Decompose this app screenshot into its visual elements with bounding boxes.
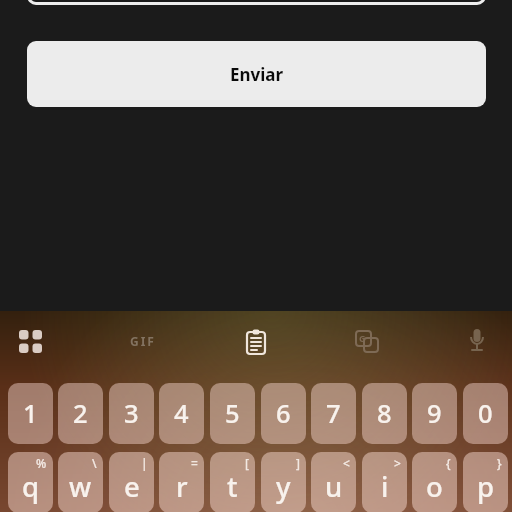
button[interactable]: r (159, 452, 204, 512)
staticText: Enviar (230, 63, 284, 86)
staticText: 5 (225, 396, 240, 431)
button[interactable]: 5 (210, 383, 255, 444)
button[interactable] (239, 324, 273, 358)
staticText: | (141, 455, 148, 471)
button[interactable]: 0 (463, 383, 508, 444)
button[interactable]: e (109, 452, 154, 512)
button[interactable]: 2 (58, 383, 103, 444)
staticText: 2 (73, 396, 88, 431)
staticText: o (426, 468, 443, 505)
button[interactable] (14, 325, 48, 359)
button[interactable]: 6 (261, 383, 306, 444)
staticText: p (477, 468, 495, 505)
staticText: % (36, 455, 47, 471)
staticText: 4 (174, 396, 189, 431)
staticText: > (394, 455, 401, 471)
button[interactable]: q (8, 452, 53, 512)
staticText: y (276, 468, 291, 505)
button[interactable]: 1 (8, 383, 53, 444)
staticText: 0 (478, 396, 493, 431)
staticText: \ (92, 455, 97, 471)
staticText: w (69, 468, 92, 505)
button[interactable]: 7 (311, 383, 356, 444)
button[interactable]: w (58, 452, 103, 512)
button[interactable]: Enviar (27, 41, 486, 107)
button[interactable]: p (463, 452, 508, 512)
button[interactable]: 9 (412, 383, 457, 444)
staticText: < (343, 455, 350, 471)
staticText: q (22, 468, 40, 505)
staticText: 8 (377, 396, 392, 431)
button[interactable]: G (350, 325, 384, 359)
button[interactable]: 4 (159, 383, 204, 444)
staticText: e (124, 468, 140, 505)
staticText: G (359, 332, 366, 344)
button[interactable]: y (261, 452, 306, 512)
staticText: 3 (124, 396, 139, 431)
staticText: u (325, 468, 343, 505)
staticText: [ (245, 455, 249, 471)
staticText: i (381, 468, 389, 505)
button[interactable]: o (412, 452, 457, 512)
staticText: GIF (130, 333, 156, 349)
staticText: ] (296, 455, 300, 471)
button[interactable]: GIF (124, 324, 162, 358)
button[interactable] (460, 325, 494, 359)
button[interactable]: u (311, 452, 356, 512)
button[interactable]: t (210, 452, 255, 512)
staticText: 6 (276, 396, 291, 431)
staticText: t (227, 468, 238, 505)
staticText: 9 (427, 396, 442, 431)
staticText: 1 (23, 396, 38, 431)
button[interactable]: i (362, 452, 407, 512)
staticText: = (191, 455, 198, 471)
button[interactable]: 3 (109, 383, 154, 444)
staticText: } (497, 455, 502, 471)
button[interactable]: 8 (362, 383, 407, 444)
staticText: 7 (326, 396, 341, 431)
staticText: { (446, 455, 451, 471)
staticText: r (176, 468, 188, 505)
